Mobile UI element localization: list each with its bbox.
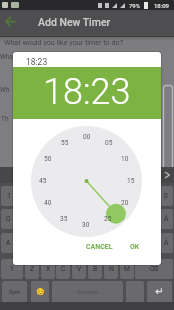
staticText: 55 — [61, 139, 69, 147]
staticText: 50 — [44, 155, 52, 163]
staticText: M — [124, 265, 130, 273]
staticText: ⌫ — [149, 265, 159, 273]
staticText: ‹ Svenska › — [74, 289, 101, 295]
staticText: 05 — [105, 139, 113, 147]
staticText: 15 — [127, 177, 135, 185]
staticText: ⇧ — [9, 265, 15, 273]
staticText: 18:09 — [154, 2, 169, 9]
button[interactable] — [2, 14, 20, 32]
staticText: CANCEL — [86, 243, 113, 251]
staticText: What — [0, 53, 16, 61]
staticText: 18:23 — [26, 57, 48, 67]
staticText: 0 — [164, 192, 168, 200]
staticText: OK — [130, 243, 140, 251]
staticText: H — [85, 239, 90, 247]
staticText: X — [46, 265, 51, 273]
staticText: What would you like your timer to do? — [4, 38, 124, 46]
staticText: 79% — [129, 2, 141, 9]
staticText: V — [77, 265, 82, 273]
staticText: Ä — [164, 239, 169, 247]
staticText: B — [93, 265, 98, 273]
staticText: Z — [30, 265, 35, 273]
staticText: N — [109, 265, 114, 273]
staticText: Y — [85, 215, 90, 223]
staticText: Add New Timer — [38, 16, 111, 28]
staticText: A — [6, 239, 11, 247]
button[interactable]: OK — [126, 240, 144, 253]
staticText: Sym — [9, 289, 20, 295]
staticText: C — [61, 265, 66, 273]
staticText: . — [134, 288, 136, 296]
button[interactable]: CANCEL — [82, 240, 116, 253]
staticText: Th — [1, 115, 9, 123]
staticText: U — [101, 215, 106, 223]
staticText: 30 — [82, 221, 90, 229]
staticText: 40 — [44, 199, 52, 207]
staticText: 1 — [7, 192, 11, 200]
staticText: 25 — [104, 215, 112, 223]
staticText: 35 — [60, 215, 68, 223]
staticText: Q — [6, 215, 11, 223]
staticText: 6 — [94, 192, 98, 200]
staticText: Wh — [0, 86, 10, 94]
staticText: 10 — [121, 155, 129, 163]
staticText: ↵ — [155, 286, 164, 298]
staticText: L — [133, 239, 137, 247]
staticText: 20 — [121, 199, 129, 207]
staticText: Å — [164, 215, 169, 223]
staticText: 45 — [39, 177, 47, 185]
staticText: 00 — [83, 133, 91, 141]
staticText: J — [101, 239, 105, 247]
staticText: 18:23 — [43, 71, 131, 113]
staticText: ☺ — [36, 288, 45, 296]
